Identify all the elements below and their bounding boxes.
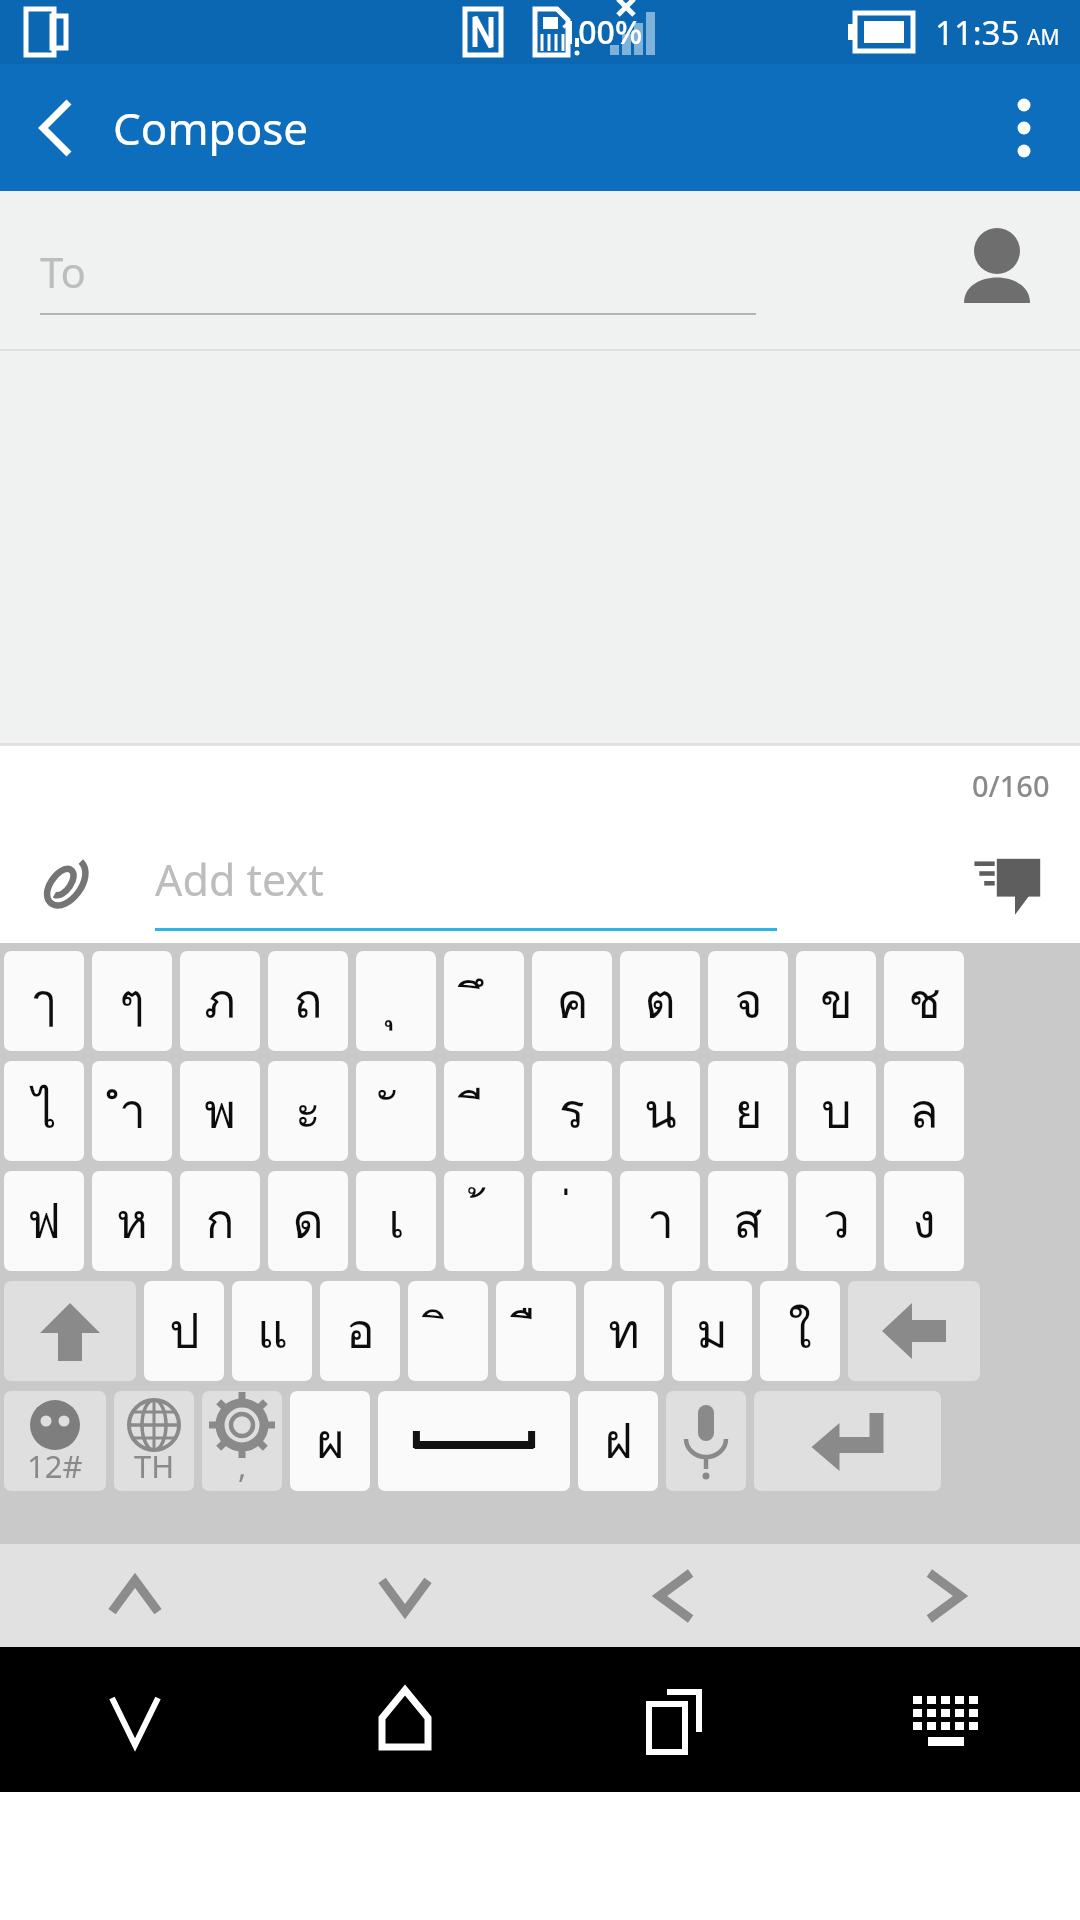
staticText: 100%: [560, 10, 643, 54]
button[interactable]: ส: [708, 1171, 788, 1271]
button[interactable]: To: [0, 191, 1080, 351]
button[interactable]: Move down: [270, 1544, 540, 1647]
staticText: จ: [734, 963, 763, 1039]
staticText: ห: [116, 1183, 148, 1259]
button[interactable]: น: [620, 1061, 700, 1161]
staticText: To: [40, 243, 86, 300]
button[interactable]: Voice input: [666, 1391, 746, 1491]
button[interactable]: ถ: [268, 951, 348, 1051]
button[interactable]: Settings: [202, 1391, 282, 1491]
staticText: ต: [644, 963, 676, 1039]
staticText: ๅ: [32, 963, 56, 1039]
button[interactable]: Language: [114, 1391, 194, 1491]
staticText: ด: [292, 1183, 324, 1259]
staticText: ำ: [119, 1073, 146, 1149]
button[interactable]: ิ: [408, 1281, 488, 1381]
button[interactable]: า: [620, 1171, 700, 1271]
staticText: ท: [608, 1293, 640, 1369]
button[interactable]: ป: [144, 1281, 224, 1381]
button[interactable]: Move up: [0, 1544, 270, 1647]
button[interactable]: Move right: [810, 1544, 1080, 1647]
staticText: ๆ: [119, 963, 145, 1039]
staticText: อ: [346, 1293, 375, 1369]
button[interactable]: Backspace: [848, 1281, 980, 1381]
button[interactable]: ะ: [268, 1061, 348, 1161]
staticText: ใ: [788, 1293, 812, 1369]
staticText: 11:35: [935, 10, 1020, 55]
button[interactable]: ท: [584, 1281, 664, 1381]
button[interactable]: ข: [796, 951, 876, 1051]
staticText: ร: [559, 1073, 585, 1149]
button[interactable]: ฝ: [578, 1391, 658, 1491]
button[interactable]: ผ: [290, 1391, 370, 1491]
button[interactable]: ่: [532, 1171, 612, 1271]
staticText: พ: [204, 1073, 236, 1149]
staticText: AM: [1027, 23, 1060, 52]
button[interactable]: บ: [796, 1061, 876, 1161]
button[interactable]: ง: [884, 1171, 964, 1271]
button[interactable]: ้: [444, 1171, 524, 1271]
staticText: ว: [823, 1183, 850, 1259]
button[interactable]: ร: [532, 1061, 612, 1161]
staticText: า: [647, 1183, 674, 1259]
staticText: 12#: [27, 1445, 83, 1487]
button[interactable]: ห: [92, 1171, 172, 1271]
button[interactable]: Enter: [754, 1391, 941, 1491]
button[interactable]: Attach: [20, 839, 110, 929]
button[interactable]: Send: [960, 836, 1056, 932]
staticText: ค: [556, 963, 589, 1039]
staticText: ส: [733, 1183, 763, 1259]
staticText: แ: [257, 1293, 288, 1369]
staticText: ก: [205, 1183, 235, 1259]
button[interactable]: ภ: [180, 951, 260, 1051]
button[interactable]: ม: [672, 1281, 752, 1381]
button[interactable]: เ: [356, 1171, 436, 1271]
staticText: ล: [909, 1073, 939, 1149]
button[interactable]: Hide keyboard: [0, 1647, 270, 1792]
button[interactable]: Pick contact: [954, 228, 1040, 314]
button[interactable]: ก: [180, 1171, 260, 1271]
button[interactable]: ล: [884, 1061, 964, 1161]
staticText: ไ: [32, 1073, 57, 1149]
staticText: ช: [908, 963, 941, 1039]
button[interactable]: ุ: [356, 951, 436, 1051]
button[interactable]: จ: [708, 951, 788, 1051]
button[interactable]: ย: [708, 1061, 788, 1161]
button[interactable]: ๅ: [4, 951, 84, 1051]
button[interactable]: More options: [984, 88, 1064, 168]
button[interactable]: Back: [16, 88, 96, 168]
staticText: ป: [169, 1293, 200, 1369]
button[interactable]: Emoji: [4, 1391, 106, 1491]
button[interactable]: ว: [796, 1171, 876, 1271]
button[interactable]: พ: [180, 1061, 260, 1161]
button[interactable]: ำ: [92, 1061, 172, 1161]
button[interactable]: อ: [320, 1281, 400, 1381]
button[interactable]: ี: [444, 1061, 524, 1161]
button[interactable]: Shift: [4, 1281, 136, 1381]
button[interactable]: ั: [356, 1061, 436, 1161]
staticText: TH: [134, 1445, 175, 1487]
button[interactable]: ใ: [760, 1281, 840, 1381]
button[interactable]: Switch keyboard: [810, 1647, 1080, 1792]
button[interactable]: ต: [620, 951, 700, 1051]
button[interactable]: ค: [532, 951, 612, 1051]
staticText: Add text: [155, 850, 324, 909]
staticText: บ: [821, 1073, 852, 1149]
button[interactable]: ด: [268, 1171, 348, 1271]
button[interactable]: ึ: [444, 951, 524, 1051]
button[interactable]: Add text: [155, 824, 777, 943]
staticText: ย: [734, 1073, 763, 1149]
button[interactable]: ไ: [4, 1061, 84, 1161]
button[interactable]: Recent apps: [540, 1647, 810, 1792]
button[interactable]: ๆ: [92, 951, 172, 1051]
button[interactable]: แ: [232, 1281, 312, 1381]
button[interactable]: Move left: [540, 1544, 810, 1647]
button[interactable]: ื: [496, 1281, 576, 1381]
button[interactable]: ช: [884, 951, 964, 1051]
button[interactable]: ฟ: [4, 1171, 84, 1271]
staticText: เ: [388, 1183, 405, 1259]
button[interactable]: Home: [270, 1647, 540, 1792]
button[interactable]: Space: [378, 1391, 570, 1491]
staticText: ถ: [293, 963, 323, 1039]
